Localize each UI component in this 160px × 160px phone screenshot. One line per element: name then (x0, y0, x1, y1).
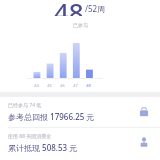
button[interactable]: 使用 88 美团消费金 (0, 128, 160, 158)
staticText: 47 (73, 83, 78, 88)
staticText: 已参与 (73, 22, 88, 28)
staticText: 参考总回报 17966.25 元 (8, 111, 95, 122)
staticText: 使用 88 美团消费金 (8, 133, 52, 140)
staticText: 48 (54, 0, 84, 16)
button[interactable]: 已经参与 74 笔 (0, 97, 160, 127)
other: Cash back details (136, 135, 152, 151)
staticText: 46 (60, 83, 65, 88)
staticText: 45 (47, 83, 52, 88)
staticText: 已经参与 74 笔 (8, 102, 42, 109)
staticText: 累计抵现 508.53 元 (8, 142, 78, 153)
staticText: 44 (34, 83, 39, 88)
staticText: 48 (86, 83, 91, 88)
staticText: /52周 (85, 3, 106, 14)
other: Total return details (136, 104, 152, 120)
